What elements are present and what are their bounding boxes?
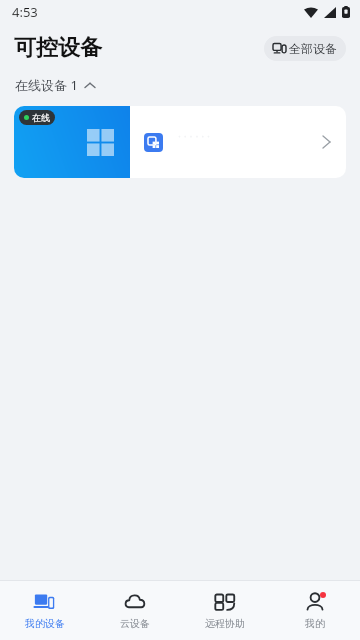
staticText: 云设备 [120,617,150,630]
button[interactable]: 全部设备 [264,36,346,61]
staticText: 在线 [32,112,50,123]
button[interactable]: 云设备 [90,585,180,636]
button[interactable]: 远程协助 [180,585,270,636]
staticText: 远程协助 [205,617,245,630]
button[interactable]: 我的 [270,585,360,636]
staticText: 我的 [305,617,325,630]
button[interactable]: 在线设备 1 [15,72,345,98]
staticText: 全部设备 [289,41,337,56]
staticText: 在线设备 1 [15,76,78,94]
staticText: 4:53 [12,3,38,21]
button[interactable]: 我的设备 [0,585,90,636]
staticText: 可控设备 [14,34,102,62]
button[interactable]: 在线 [14,106,346,178]
staticText: 我的设备 [25,617,65,630]
